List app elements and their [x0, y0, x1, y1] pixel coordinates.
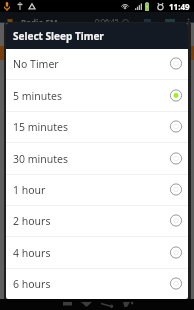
staticText: 11:49 — [169, 1, 190, 12]
staticText: Radio FM — [21, 17, 58, 28]
staticText: 1 hour — [13, 183, 169, 197]
button[interactable]: 15 minutes — [6, 112, 188, 142]
staticText: Select Sleep Timer — [13, 29, 104, 43]
staticText: 2 hours — [13, 214, 169, 228]
button[interactable]: 4 hours — [6, 237, 188, 268]
button[interactable]: 30 minutes — [6, 143, 188, 174]
staticText: 5 minutes — [13, 89, 169, 103]
staticText: No Timer — [13, 57, 169, 71]
button[interactable]: 6 hours — [6, 269, 188, 299]
staticText: 0:06:45 — [95, 17, 119, 27]
button[interactable]: No Timer — [6, 49, 188, 79]
button[interactable]: 2 hours — [6, 206, 188, 236]
button[interactable]: 1 hour — [6, 175, 188, 205]
button[interactable]: 5 minutes — [6, 80, 188, 111]
staticText: 4 hours — [13, 246, 169, 260]
staticText: 6 hours — [13, 277, 169, 291]
staticText: 15 minutes — [13, 120, 169, 134]
staticText: 30 minutes — [13, 152, 169, 166]
